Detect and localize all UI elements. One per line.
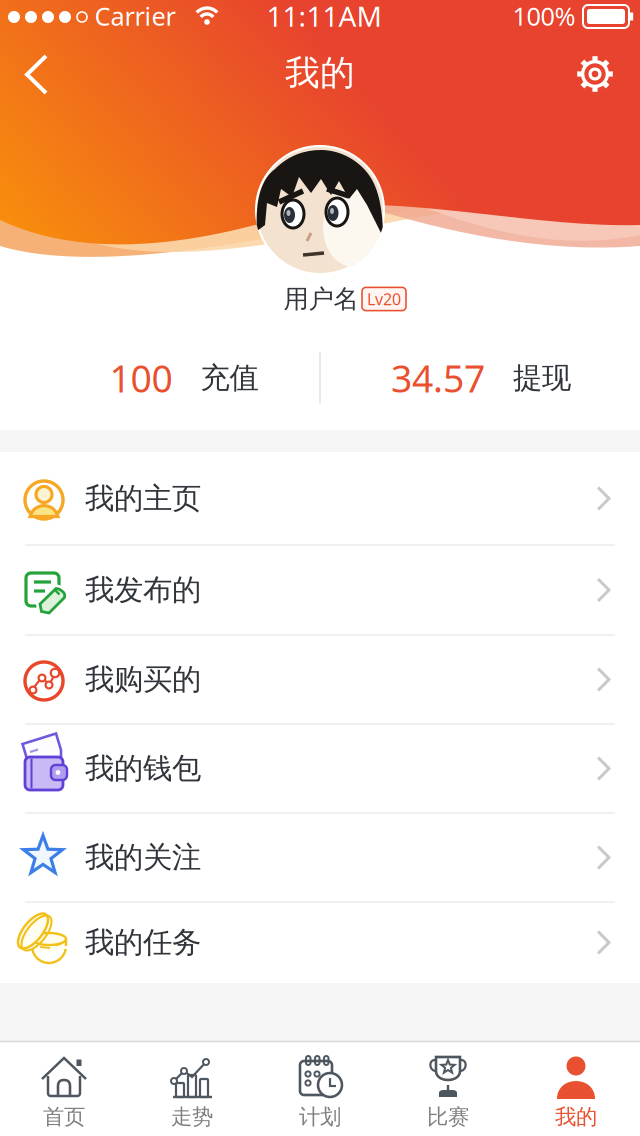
button[interactable]: 我的主页 <box>0 452 640 545</box>
staticText: Lv20 <box>367 288 401 310</box>
staticText: 用户名 <box>283 283 358 314</box>
button[interactable]: 我的 <box>512 1043 640 1135</box>
staticText: 我购买的 <box>85 661 201 697</box>
staticText: 首页 <box>43 1104 85 1130</box>
button[interactable]: 34.57 <box>321 346 640 410</box>
staticText: 我的关注 <box>85 839 201 875</box>
button[interactable]: 我的任务 <box>0 902 640 983</box>
staticText: 11:11AM <box>266 0 381 35</box>
staticText: 34.57 <box>391 353 485 403</box>
staticText: 走势 <box>171 1104 213 1130</box>
staticText: 100% <box>512 0 575 33</box>
staticText: 我发布的 <box>85 572 201 608</box>
staticText: 提现 <box>513 360 571 396</box>
staticText: 100 <box>109 353 172 403</box>
staticText: 比赛 <box>427 1104 469 1130</box>
staticText: 我的 <box>555 1104 597 1130</box>
staticText: 我的钱包 <box>85 750 201 786</box>
button[interactable]: Lv20 <box>362 287 406 311</box>
button[interactable]: 计划 <box>256 1043 384 1135</box>
button[interactable]: 100 <box>24 346 344 410</box>
button[interactable]: Settings <box>567 46 623 102</box>
button[interactable]: 我发布的 <box>0 545 640 635</box>
button[interactable]: 我的钱包 <box>0 724 640 813</box>
button[interactable]: 首页 <box>0 1043 128 1135</box>
staticText: 我的主页 <box>85 480 201 516</box>
button[interactable]: 走势 <box>128 1043 256 1135</box>
button[interactable]: 比赛 <box>384 1043 512 1135</box>
button[interactable]: 我购买的 <box>0 635 640 724</box>
staticText: 我的 <box>285 52 355 94</box>
button[interactable]: 我的关注 <box>0 813 640 902</box>
staticText: Carrier <box>94 0 175 33</box>
staticText: 我的任务 <box>85 924 201 960</box>
staticText: 充值 <box>200 360 258 396</box>
button[interactable]: Back <box>8 43 68 105</box>
staticText: 计划 <box>299 1104 341 1130</box>
